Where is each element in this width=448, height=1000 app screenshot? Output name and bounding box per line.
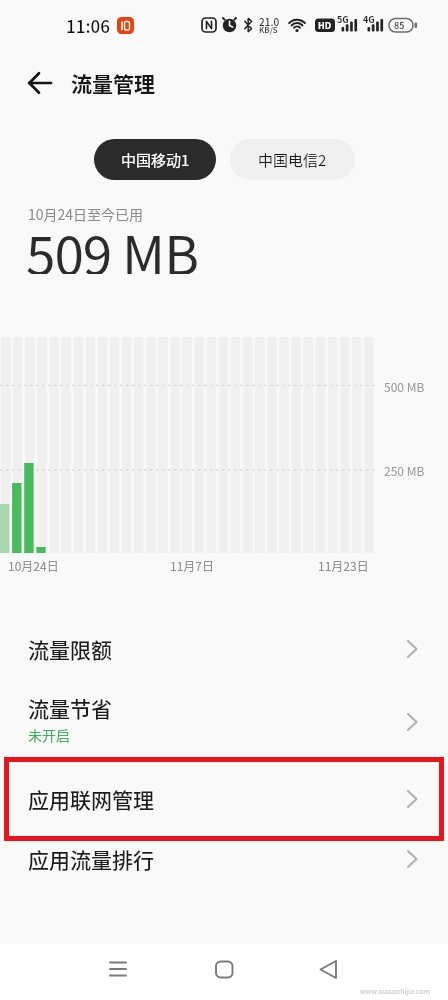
staticText: KB/S <box>259 24 278 36</box>
staticText: 11月7日 <box>170 557 214 574</box>
staticText: 中国移动1 <box>121 149 190 171</box>
staticText: 250 MB <box>384 462 425 479</box>
staticText: www.xiazaizhijia.com <box>360 986 431 996</box>
staticText: 500 MB <box>384 378 425 395</box>
button[interactable] <box>94 945 142 993</box>
staticText: 11:06 <box>66 13 110 38</box>
button[interactable] <box>0 685 448 760</box>
staticText: 未开启 <box>28 725 70 745</box>
staticText: 中国电信2 <box>258 149 327 171</box>
staticText: 流量节省 <box>28 693 112 723</box>
button[interactable] <box>0 619 448 679</box>
staticText: 85 <box>394 19 405 32</box>
staticText: 509 MB <box>26 214 198 274</box>
button[interactable]: 中国移动1 <box>94 139 216 180</box>
staticText: 流量管理 <box>71 68 155 98</box>
staticText: 10月24日至今已用 <box>28 204 144 224</box>
button[interactable] <box>0 769 448 829</box>
staticText: 10月24日 <box>8 557 59 574</box>
staticText: 21.0 <box>259 14 280 28</box>
button[interactable] <box>22 66 58 102</box>
button[interactable]: 中国电信2 <box>230 139 355 180</box>
staticText: 流量限额 <box>28 634 112 664</box>
staticText: 应用联网管理 <box>28 784 154 814</box>
staticText: HD <box>318 19 332 32</box>
button[interactable] <box>304 945 352 993</box>
staticText: 应用流量排行 <box>28 844 154 874</box>
button[interactable] <box>0 829 448 889</box>
button[interactable] <box>200 945 248 993</box>
staticText: 11月23日 <box>318 557 369 574</box>
staticText: 5G <box>337 13 349 26</box>
staticText: 4G <box>363 13 375 26</box>
